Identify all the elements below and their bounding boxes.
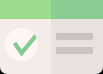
button[interactable]: Task completed xyxy=(5,28,38,61)
